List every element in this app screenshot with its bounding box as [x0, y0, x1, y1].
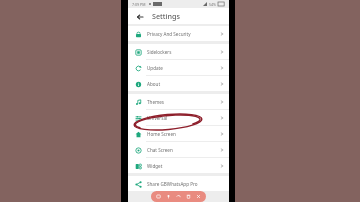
button[interactable]: Chat Screen: [128, 142, 229, 157]
staticText: 54%: [209, 2, 217, 7]
button[interactable]: Home Screen: [128, 126, 229, 141]
staticText: Sidelockers: [147, 49, 220, 55]
staticText: Universal: [147, 115, 220, 121]
button[interactable]: Back: [134, 11, 145, 22]
staticText: Home Screen: [147, 131, 220, 137]
button[interactable]: Themes: [128, 94, 229, 109]
staticText: Share GBWhatsApp Pro: [147, 181, 224, 187]
button[interactable]: Privacy And Security: [128, 26, 229, 41]
button[interactable]: Universal: [128, 110, 229, 125]
staticText: About: [147, 81, 220, 87]
staticText: Settings: [152, 11, 180, 21]
button[interactable]: Undo: [175, 193, 182, 200]
staticText: Update: [147, 65, 220, 71]
staticText: Widget: [147, 163, 220, 169]
button[interactable]: Close: [195, 193, 202, 200]
staticText: Privacy And Security: [147, 31, 220, 37]
button[interactable]: Screenshot: [155, 193, 162, 200]
button[interactable]: Record: [165, 193, 172, 200]
button[interactable]: Widget: [128, 158, 229, 173]
button[interactable]: Share GBWhatsApp Pro: [128, 176, 229, 191]
button[interactable]: Update: [128, 60, 229, 75]
button[interactable]: Sidelockers: [128, 44, 229, 59]
button[interactable]: About: [128, 76, 229, 91]
button[interactable]: Delete: [185, 193, 192, 200]
staticText: Chat Screen: [147, 147, 220, 153]
staticText: 7:09 PM: [132, 2, 146, 7]
staticText: Themes: [147, 99, 220, 105]
